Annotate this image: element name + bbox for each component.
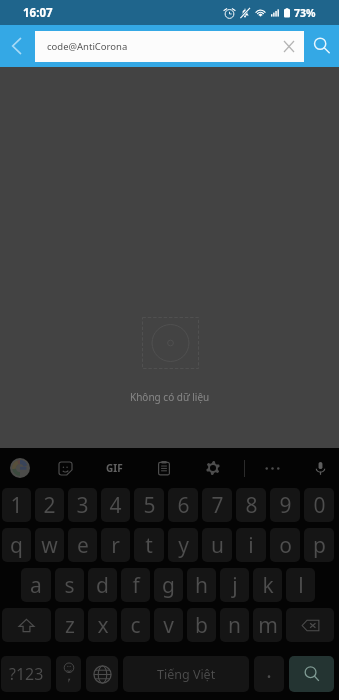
button[interactable]: 6 xyxy=(168,488,198,522)
button[interactable]: z xyxy=(55,608,84,642)
button[interactable]: l xyxy=(286,568,315,602)
staticText: 0 xyxy=(313,491,326,520)
staticText: GIF xyxy=(106,461,123,475)
staticText: p xyxy=(313,531,326,560)
staticText: t xyxy=(145,531,153,560)
button[interactable]: b xyxy=(187,608,216,642)
button[interactable]: y xyxy=(168,528,198,562)
staticText: 7 xyxy=(211,491,224,520)
button[interactable]: Voice input xyxy=(306,454,334,482)
staticText: 3 xyxy=(76,491,89,520)
button[interactable]: d xyxy=(88,568,117,602)
button[interactable]: Tiếng Việt xyxy=(123,656,249,692)
staticText: ?123 xyxy=(9,663,44,685)
button[interactable]: f xyxy=(121,568,150,602)
button[interactable]: k xyxy=(253,568,282,602)
button[interactable]: Settings xyxy=(199,454,227,482)
button[interactable]: w xyxy=(35,528,64,562)
staticText: 9 xyxy=(279,491,292,520)
button[interactable]: r xyxy=(101,528,130,562)
button[interactable]: a xyxy=(21,568,51,602)
button[interactable]: 9 xyxy=(270,488,300,522)
staticText: b xyxy=(195,611,208,640)
button[interactable]: g xyxy=(154,568,183,602)
staticText: x xyxy=(97,611,109,640)
button[interactable]: e xyxy=(68,528,97,562)
button[interactable]: 1 xyxy=(2,488,31,522)
staticText: k xyxy=(262,571,274,600)
button[interactable]: Clipboard xyxy=(150,454,178,482)
staticText: a xyxy=(30,571,42,600)
staticText: n xyxy=(228,611,241,640)
staticText: f xyxy=(132,571,140,600)
button[interactable]: code@AntiCorona xyxy=(35,31,304,62)
staticText: s xyxy=(64,571,75,600)
button[interactable]: t xyxy=(134,528,164,562)
button[interactable]: 7 xyxy=(202,488,232,522)
staticText: u xyxy=(211,531,224,560)
button[interactable]: s xyxy=(55,568,84,602)
staticText: 4 xyxy=(109,491,122,520)
staticText: code@AntiCorona xyxy=(47,40,128,53)
staticText: Tiếng Việt xyxy=(157,666,216,683)
button[interactable]: 3 xyxy=(68,488,97,522)
button[interactable]: q xyxy=(2,528,31,562)
staticText: v xyxy=(163,611,174,640)
button[interactable]: v xyxy=(154,608,183,642)
staticText: 6 xyxy=(177,491,190,520)
staticText: m xyxy=(258,611,278,640)
button[interactable]: h xyxy=(187,568,216,602)
staticText: Không có dữ liệu xyxy=(130,390,210,404)
button[interactable] xyxy=(254,656,284,692)
staticText: 8 xyxy=(245,491,258,520)
button[interactable]: 4 xyxy=(101,488,130,522)
staticText: c xyxy=(130,611,141,640)
button[interactable]: o xyxy=(270,528,300,562)
staticText: o xyxy=(279,531,292,560)
button[interactable]: 0 xyxy=(304,488,334,522)
button[interactable]: 5 xyxy=(134,488,164,522)
staticText: 16:07 xyxy=(23,5,53,21)
staticText: 1 xyxy=(10,491,23,520)
button[interactable]: More options xyxy=(258,454,286,482)
button[interactable]: x xyxy=(88,608,117,642)
staticText: 2 xyxy=(43,491,56,520)
button[interactable]: Shift xyxy=(2,608,51,642)
button[interactable]: m xyxy=(253,608,282,642)
button[interactable]: Search xyxy=(304,25,339,67)
button[interactable]: GIF xyxy=(100,454,128,482)
button[interactable]: Back xyxy=(0,25,32,67)
staticText: y xyxy=(178,531,189,560)
button[interactable]: Google search xyxy=(6,454,34,482)
staticText: z xyxy=(65,611,75,640)
button[interactable]: c xyxy=(121,608,150,642)
staticText: d xyxy=(96,571,109,600)
staticText: j xyxy=(232,571,238,600)
button[interactable]: 2 xyxy=(35,488,64,522)
staticText: l xyxy=(298,571,304,600)
staticText: 73% xyxy=(294,6,316,20)
button[interactable]: Emoji xyxy=(56,656,81,692)
button[interactable]: 8 xyxy=(236,488,266,522)
button[interactable]: ?123 xyxy=(1,656,51,692)
button[interactable]: n xyxy=(220,608,249,642)
button[interactable]: p xyxy=(304,528,334,562)
button[interactable]: u xyxy=(202,528,232,562)
staticText: r xyxy=(111,531,120,560)
button[interactable]: Clear text xyxy=(274,31,304,62)
staticText: q xyxy=(10,531,23,560)
staticText: h xyxy=(195,571,208,600)
button[interactable]: Search xyxy=(289,656,334,692)
button[interactable]: Backspace xyxy=(286,608,334,642)
button[interactable]: i xyxy=(236,528,266,562)
button[interactable]: j xyxy=(220,568,249,602)
staticText: g xyxy=(162,571,175,600)
button[interactable]: Stickers xyxy=(51,454,79,482)
staticText: 5 xyxy=(143,491,156,520)
button[interactable]: Change language xyxy=(86,656,118,692)
staticText: i xyxy=(248,531,254,560)
staticText: e xyxy=(77,531,89,560)
staticText: w xyxy=(41,531,58,560)
